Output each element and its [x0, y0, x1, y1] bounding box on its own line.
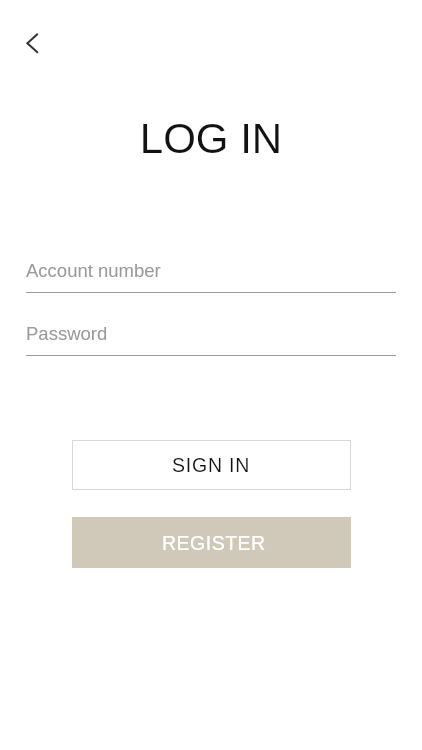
- button[interactable]: Back: [4, 21, 48, 65]
- button[interactable]: SIGN IN: [72, 440, 351, 490]
- staticText: REGISTER: [162, 532, 266, 554]
- staticText: LOG IN: [0, 115, 422, 162]
- button[interactable]: REGISTER: [72, 517, 351, 568]
- staticText: SIGN IN: [172, 454, 251, 476]
- staticText: Account number: [26, 260, 161, 281]
- staticText: Password: [26, 323, 108, 344]
